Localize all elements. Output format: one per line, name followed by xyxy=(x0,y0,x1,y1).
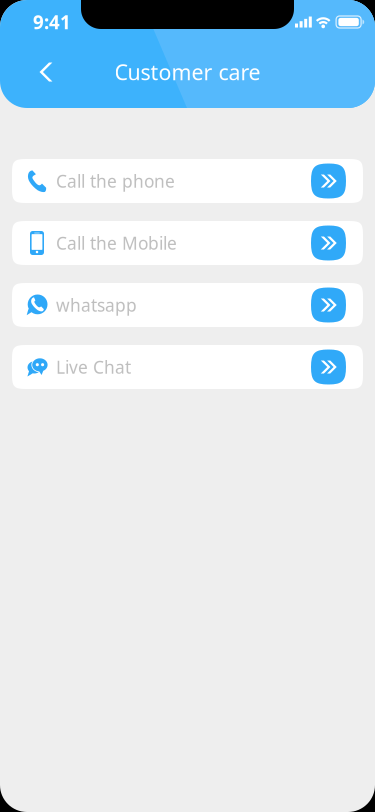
staticText: Live Chat xyxy=(56,355,131,378)
button[interactable]: Call the phone xyxy=(12,159,363,203)
staticText: Call the phone xyxy=(56,169,175,192)
staticText: Call the Mobile xyxy=(56,231,177,254)
button[interactable]: Live Chat xyxy=(12,345,363,389)
staticText: Customer care xyxy=(114,58,260,86)
staticText: 9:41 xyxy=(33,10,71,34)
button[interactable]: Call the Mobile xyxy=(12,221,363,265)
button[interactable]: whatsapp xyxy=(12,283,363,327)
button[interactable]: Back xyxy=(24,50,68,94)
staticText: whatsapp xyxy=(56,293,137,316)
